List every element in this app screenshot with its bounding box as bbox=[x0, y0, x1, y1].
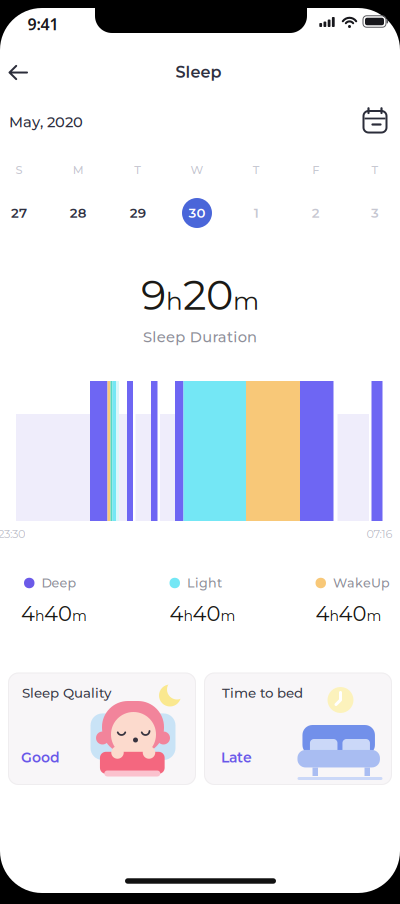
staticText: Light bbox=[187, 575, 222, 591]
staticText: Good bbox=[21, 749, 60, 766]
staticText: 28 bbox=[70, 205, 87, 221]
button[interactable]: 28 bbox=[60, 195, 96, 231]
staticText: WakeUp bbox=[333, 575, 390, 591]
staticText: T bbox=[134, 163, 141, 177]
staticText: 4h40m bbox=[21, 601, 87, 626]
button[interactable]: Sleep Quality bbox=[8, 672, 196, 785]
staticText: W bbox=[190, 163, 203, 177]
button[interactable]: 29 bbox=[120, 195, 156, 231]
staticText: 1 bbox=[254, 205, 259, 221]
staticText: Deep bbox=[41, 575, 76, 591]
staticText: 23:30 bbox=[0, 527, 26, 541]
staticText: S bbox=[15, 163, 22, 177]
staticText: May, 2020 bbox=[9, 113, 83, 131]
staticText: 27 bbox=[11, 205, 27, 221]
button[interactable]: Calendar bbox=[362, 106, 388, 133]
staticText: 30 bbox=[188, 205, 205, 221]
staticText: 3 bbox=[371, 205, 379, 221]
staticText: Sleep Duration bbox=[143, 328, 257, 346]
staticText: M bbox=[73, 163, 84, 177]
staticText: Sleep Quality bbox=[22, 685, 111, 701]
staticText: 07:16 bbox=[366, 527, 392, 541]
button[interactable]: 27 bbox=[1, 195, 37, 231]
staticText: 4h40m bbox=[315, 601, 381, 626]
button[interactable]: 2 bbox=[298, 195, 334, 231]
staticText: 9h20m bbox=[141, 270, 259, 319]
staticText: 29 bbox=[130, 205, 146, 221]
button[interactable]: Back bbox=[4, 57, 36, 87]
staticText: Sleep bbox=[175, 62, 221, 82]
staticText: 4h40m bbox=[169, 601, 235, 626]
button[interactable]: 3 bbox=[357, 195, 393, 231]
staticText: T bbox=[253, 163, 260, 177]
staticText: T bbox=[371, 163, 378, 177]
staticText: 2 bbox=[312, 205, 320, 221]
staticText: 9:41 bbox=[27, 13, 58, 35]
button[interactable]: Time to bed bbox=[204, 672, 392, 785]
staticText: Time to bed bbox=[222, 685, 303, 701]
button[interactable]: 1 bbox=[238, 195, 274, 231]
staticText: Late bbox=[221, 749, 252, 766]
staticText: F bbox=[312, 163, 319, 177]
button[interactable]: 30 bbox=[179, 195, 215, 231]
